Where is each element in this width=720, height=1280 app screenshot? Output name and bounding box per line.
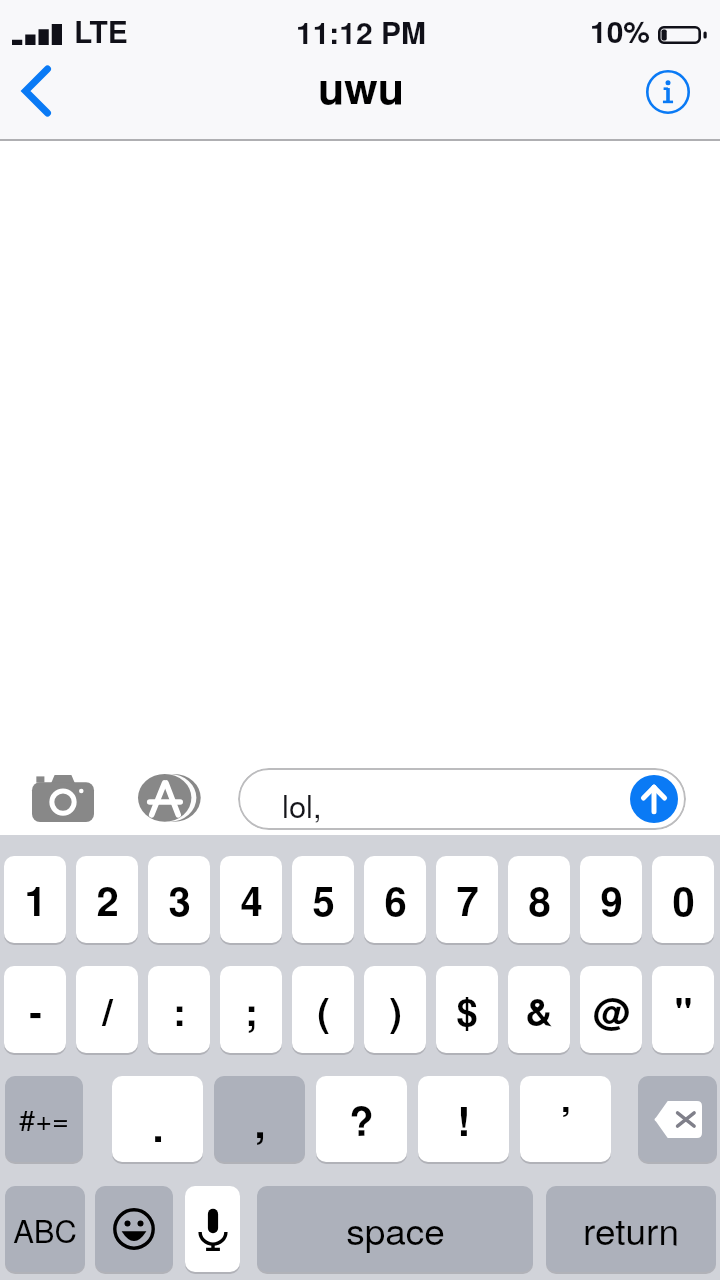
button[interactable]: 5 [292,856,354,943]
button[interactable]: ( [292,966,354,1053]
button[interactable] [638,1076,717,1162]
staticText: & [525,983,553,1037]
staticText: 9 [600,871,623,928]
button[interactable]: " [652,966,714,1053]
staticText: 1 [24,871,47,928]
staticText: 7 [456,871,479,928]
staticText: " [674,983,693,1037]
button[interactable]: Send [630,775,678,823]
staticText: ? [349,1091,374,1148]
button[interactable]: - [4,966,66,1053]
staticText: $ [456,983,478,1037]
staticText: : [173,983,186,1037]
button[interactable]: , [214,1076,305,1162]
button[interactable]: ABC [5,1186,85,1272]
staticText: 4 [240,871,263,928]
staticText: . [152,1097,164,1154]
button[interactable]: return [546,1186,716,1272]
staticText: space [346,1203,445,1256]
button[interactable]: ) [364,966,426,1053]
button[interactable]: 6 [364,856,426,943]
staticText: ; [245,983,258,1037]
staticText: ABC [13,1207,77,1251]
staticText: uwu [1,56,720,118]
button[interactable]: lol, [238,768,686,830]
button[interactable]: . [112,1076,203,1162]
staticText: 10% [590,9,651,52]
button[interactable]: Apps [130,766,206,830]
staticText: 2 [96,871,119,928]
button[interactable]: 2 [76,856,138,943]
staticText: , [254,1093,266,1150]
staticText: ( [317,983,330,1037]
staticText: 6 [384,871,407,928]
staticText: ! [457,1091,471,1148]
staticText: return [583,1203,679,1256]
button[interactable]: 3 [148,856,210,943]
button[interactable]: 8 [508,856,570,943]
button[interactable]: Back [4,56,74,126]
staticText: 0 [672,871,695,928]
button[interactable]: 4 [220,856,282,943]
button[interactable]: #+= [5,1076,83,1162]
button[interactable]: & [508,966,570,1053]
button[interactable] [185,1186,240,1272]
staticText: 3 [168,871,191,928]
button[interactable] [95,1186,173,1272]
button[interactable]: / [76,966,138,1053]
staticText: 8 [528,871,551,928]
staticText: @ [592,983,630,1037]
staticText: / [102,983,113,1037]
button[interactable]: 9 [580,856,642,943]
button[interactable]: Camera [18,763,108,833]
button[interactable]: : [148,966,210,1053]
staticText: #+= [19,1098,69,1140]
staticText: 5 [312,871,335,928]
button[interactable]: space [257,1186,533,1272]
staticText: LTE [74,9,128,52]
button[interactable]: $ [436,966,498,1053]
staticText: ’ [560,1091,572,1148]
button[interactable]: Details [638,62,698,122]
button[interactable]: @ [580,966,642,1053]
staticText: 11:12 PM [1,10,720,53]
button[interactable]: 7 [436,856,498,943]
button[interactable]: ! [418,1076,509,1162]
button[interactable]: 1 [4,856,66,943]
staticText: lol, [282,782,322,826]
button[interactable]: ; [220,966,282,1053]
staticText: - [29,983,42,1037]
button[interactable]: 0 [652,856,714,943]
button[interactable]: ’ [520,1076,611,1162]
staticText: ) [389,983,402,1037]
button[interactable]: ? [316,1076,407,1162]
